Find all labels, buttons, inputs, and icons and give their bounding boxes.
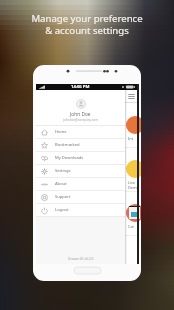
staticText: John Doe: [70, 111, 91, 118]
staticText: 14:06 PM: [71, 84, 90, 90]
staticText: Int: [128, 136, 134, 141]
button[interactable]: About: [36, 178, 125, 190]
button[interactable]: Live Demo: [36, 147, 137, 191]
staticText: Live Demo: [128, 180, 139, 190]
button[interactable]: Menu: [127, 92, 136, 101]
staticText: Manage your preference & account setting…: [0, 12, 174, 37]
staticText: Cat: [128, 224, 134, 229]
staticText: My Downloads: [55, 155, 84, 161]
staticText: Support: [55, 194, 71, 200]
button[interactable]: Bookmarked: [36, 139, 125, 151]
button[interactable]: Support: [36, 191, 125, 203]
staticText: johndoe@company.com: [63, 118, 99, 122]
staticText: Home: [55, 129, 67, 135]
button[interactable]: Settings: [36, 165, 125, 177]
staticText: Bookmarked: [55, 142, 80, 148]
button[interactable]: My Downloads: [36, 152, 125, 164]
button[interactable]: Int: [36, 103, 137, 147]
button[interactable]: Logout: [36, 204, 125, 216]
button[interactable]: Cat: [36, 191, 137, 235]
button[interactable]: Home: [36, 126, 125, 138]
staticText: DrawerUI v6.2.0: [68, 256, 94, 261]
staticText: About: [55, 181, 67, 187]
staticText: Logout: [55, 207, 69, 213]
staticText: Settings: [55, 168, 71, 174]
